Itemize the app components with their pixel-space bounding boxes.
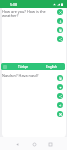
button[interactable]: Recent apps	[45, 139, 55, 149]
staticText: Nasılsın? Hava nasıl?	[2, 73, 46, 78]
staticText: English	[46, 65, 58, 69]
staticText: Türkçe	[18, 65, 29, 69]
button[interactable]: Copy translation	[57, 75, 63, 81]
button[interactable]: Home	[29, 139, 39, 149]
button[interactable]: Back	[12, 139, 22, 149]
button[interactable]: Listen translation	[57, 102, 63, 108]
button[interactable]: Listen	[57, 18, 63, 24]
staticText: How are you? How is the weather?	[2, 9, 46, 18]
button[interactable]: Share	[57, 36, 63, 42]
button[interactable]: Türkçe	[1, 63, 65, 70]
button[interactable]: Fullscreen	[57, 111, 63, 117]
button[interactable]: Save	[57, 84, 63, 90]
button[interactable]: Clear text	[57, 9, 63, 15]
button[interactable]: Share translation	[57, 93, 63, 99]
staticText: 5:08	[10, 2, 17, 7]
button[interactable]: Copy	[57, 27, 63, 33]
